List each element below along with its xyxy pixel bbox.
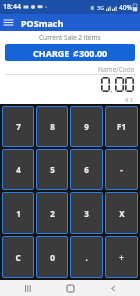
button[interactable]: Open navigation menu	[0, 14, 17, 31]
button[interactable]: 7	[2, 106, 34, 147]
button[interactable]: 4	[2, 149, 34, 190]
staticText: 40%	[119, 3, 132, 12]
staticText: 3	[84, 208, 89, 219]
staticText: 2	[50, 208, 55, 219]
button[interactable]: 1	[2, 192, 34, 234]
staticText: C	[15, 252, 21, 263]
staticText: 6	[84, 164, 89, 175]
button[interactable]: +	[105, 236, 138, 278]
button[interactable]: .	[70, 236, 103, 278]
staticText: .	[85, 252, 88, 263]
staticText: Current Sale 2 items	[39, 33, 101, 42]
button[interactable]: C	[2, 236, 34, 278]
staticText: Name/Code	[98, 65, 135, 74]
staticText: 3G	[97, 4, 105, 11]
button[interactable]: Home	[55, 280, 85, 296]
button[interactable]: 0	[36, 236, 68, 278]
button[interactable]: Back	[98, 280, 128, 296]
staticText: 18:44	[3, 2, 21, 12]
staticText: 7	[16, 121, 21, 132]
button[interactable]: 2	[36, 192, 68, 234]
staticText: 1	[16, 208, 21, 219]
staticText: POSmach	[21, 17, 64, 29]
button[interactable]: F1	[105, 106, 138, 147]
staticText: 8	[50, 121, 55, 132]
staticText: F1	[117, 121, 126, 132]
button[interactable]: Name/Code	[5, 65, 135, 74]
staticText: 0	[50, 252, 55, 263]
button[interactable]: 9	[70, 106, 103, 147]
button[interactable]: 6	[70, 149, 103, 190]
button[interactable]: CHARGE	[5, 44, 135, 61]
staticText: -	[120, 164, 123, 175]
button[interactable]: 3	[70, 192, 103, 234]
button[interactable]: 5	[36, 149, 68, 190]
button[interactable]: Recent apps	[13, 280, 43, 296]
staticText: X 1	[125, 96, 134, 104]
staticText: 5	[50, 164, 55, 175]
button[interactable]: X	[105, 192, 138, 234]
staticText: CHARGE	[33, 47, 70, 59]
staticText: X	[119, 208, 125, 219]
staticText: 9	[84, 121, 89, 132]
button[interactable]: -	[105, 149, 138, 190]
staticText: +	[119, 252, 124, 263]
button[interactable]: 8	[36, 106, 68, 147]
staticText: 300.00	[79, 47, 108, 59]
staticText: 4	[16, 164, 21, 175]
